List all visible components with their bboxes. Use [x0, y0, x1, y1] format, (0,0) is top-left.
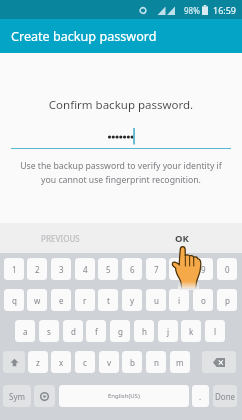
staticText: PREVIOUS	[41, 233, 80, 244]
staticText: 4	[83, 264, 88, 275]
staticText: h	[142, 326, 147, 337]
button[interactable]: 5	[98, 258, 118, 280]
button[interactable]: l	[205, 320, 225, 342]
button[interactable]: v	[99, 351, 119, 373]
button[interactable]: u	[146, 289, 166, 311]
staticText: y	[130, 295, 135, 306]
staticText: p	[225, 295, 230, 306]
staticText: f	[95, 326, 98, 337]
staticText: x	[59, 357, 64, 368]
staticText: k	[189, 326, 194, 337]
staticText: e	[59, 295, 64, 306]
staticText: 9	[201, 264, 206, 275]
button[interactable]: n	[146, 351, 166, 373]
staticText: Use the backup password to verify your i…	[8, 160, 234, 185]
staticText: 16:59	[213, 4, 237, 16]
button[interactable]: e	[51, 289, 71, 311]
button[interactable]: y	[122, 289, 142, 311]
button[interactable]: 8	[169, 258, 189, 280]
button[interactable]: 1	[4, 258, 24, 280]
staticText: n	[154, 357, 159, 368]
staticText: l	[214, 326, 217, 337]
staticText: z	[36, 357, 40, 368]
button[interactable]: h	[134, 320, 154, 342]
button[interactable]: OK	[121, 223, 242, 253]
button[interactable]: k	[181, 320, 201, 342]
staticText: 98%	[184, 5, 200, 16]
button[interactable]: g	[110, 320, 130, 342]
button[interactable]: 7	[146, 258, 166, 280]
button[interactable]: m	[170, 351, 190, 373]
button[interactable]: Sym	[3, 385, 31, 407]
button[interactable]: x	[51, 351, 71, 373]
button[interactable]: PREVIOUS	[0, 223, 121, 253]
staticText: 8	[177, 264, 182, 275]
button[interactable]: English(US)	[59, 385, 189, 407]
button[interactable]: i	[169, 289, 189, 311]
button[interactable]: Shift	[3, 351, 25, 373]
button[interactable]: f	[86, 320, 106, 342]
button[interactable]: .	[192, 385, 209, 407]
button[interactable]: t	[98, 289, 118, 311]
staticText: m	[176, 357, 184, 368]
staticText: r	[83, 295, 87, 306]
button[interactable]: Done	[213, 385, 237, 407]
staticText: 3	[59, 264, 64, 275]
staticText: 7	[154, 264, 159, 275]
staticText: 1	[12, 264, 17, 275]
button[interactable]: o	[193, 289, 213, 311]
button[interactable]: d	[63, 320, 83, 342]
button[interactable]: 0	[217, 258, 237, 280]
button[interactable]: Keyboard settings	[34, 385, 55, 407]
button[interactable]: s	[39, 320, 59, 342]
staticText: 6	[130, 264, 135, 275]
button[interactable]: Backspace	[202, 351, 236, 373]
staticText: v	[107, 357, 112, 368]
staticText: d	[71, 326, 76, 337]
staticText: i	[178, 295, 181, 306]
button[interactable]: 9	[193, 258, 213, 280]
staticText: w	[34, 295, 41, 306]
button[interactable]: w	[27, 289, 47, 311]
staticText: b	[130, 357, 135, 368]
staticText: 2	[35, 264, 40, 275]
staticText: .	[199, 391, 202, 402]
button[interactable]: r	[75, 289, 95, 311]
staticText: t	[107, 295, 110, 306]
button[interactable]: 3	[51, 258, 71, 280]
button[interactable]: b	[122, 351, 142, 373]
staticText: Sym	[9, 391, 25, 402]
button[interactable]: z	[28, 351, 48, 373]
staticText: a	[23, 326, 28, 337]
other: Tap OK	[170, 243, 204, 291]
staticText: 0	[225, 264, 230, 275]
button[interactable]: a	[15, 320, 35, 342]
staticText: u	[154, 295, 159, 306]
staticText: g	[118, 326, 123, 337]
button[interactable]: q	[4, 289, 24, 311]
staticText: Create backup password	[11, 28, 157, 45]
button[interactable]: 2	[27, 258, 47, 280]
staticText: s	[47, 326, 51, 337]
staticText: q	[12, 295, 17, 306]
staticText: j	[167, 326, 170, 337]
staticText: 5	[106, 264, 111, 275]
button[interactable]: p	[217, 289, 237, 311]
button[interactable]: j	[158, 320, 178, 342]
staticText: OK	[175, 232, 189, 245]
button[interactable]: 6	[122, 258, 142, 280]
button[interactable]: 4	[75, 258, 95, 280]
staticText: o	[201, 295, 206, 306]
staticText: Confirm backup password.	[0, 97, 242, 113]
staticText: Done	[215, 391, 236, 402]
staticText: c	[83, 357, 87, 368]
button[interactable]: c	[75, 351, 95, 373]
staticText: English(US)	[108, 392, 140, 400]
